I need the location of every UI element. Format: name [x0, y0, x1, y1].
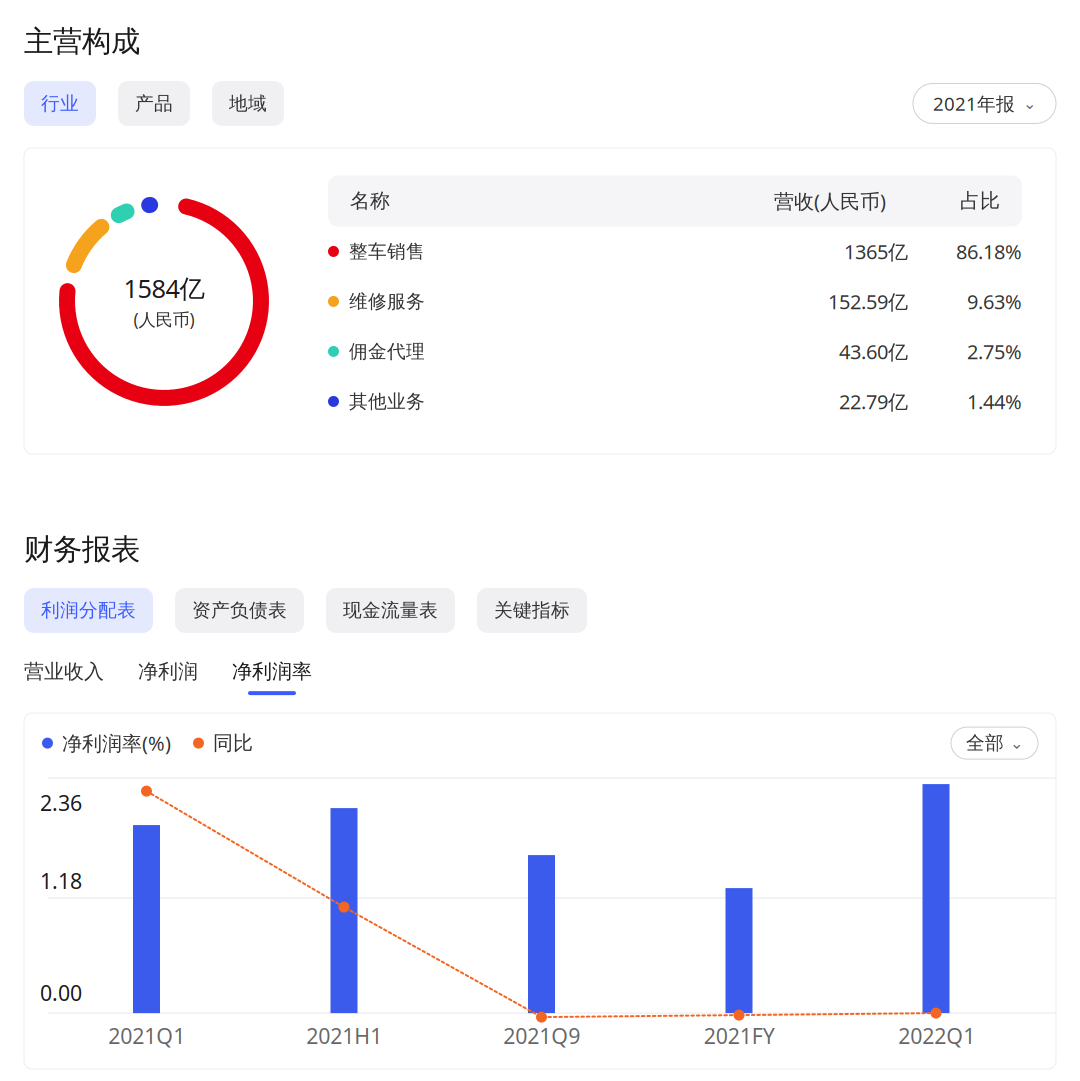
staticText: 关键指标 [494, 599, 570, 622]
staticText: 占比 [960, 188, 1000, 214]
staticText: 维修服务 [349, 290, 425, 313]
button[interactable]: 资产负债表 [175, 588, 304, 633]
staticText: 名称 [350, 188, 390, 214]
button[interactable]: 地域 [212, 81, 284, 126]
staticText: 资产负债表 [192, 599, 287, 622]
staticText: 1.18 [40, 866, 82, 895]
staticText: 现金流量表 [343, 599, 438, 622]
button[interactable]: 利润分配表 [24, 588, 153, 633]
button[interactable]: 产品 [118, 81, 190, 126]
staticText: 1365亿 [844, 238, 908, 265]
staticText: 净利润率(%) [62, 729, 171, 757]
staticText: 净利润率 [232, 659, 312, 684]
staticText: 9.63% [967, 288, 1022, 315]
staticText: 22.79亿 [839, 388, 908, 415]
staticText: 2021Q1 [108, 1021, 185, 1050]
button[interactable]: 行业 [24, 81, 96, 126]
staticText: 2021H1 [306, 1021, 382, 1050]
button[interactable]: 现金流量表 [326, 588, 455, 633]
staticText: 2021FY [704, 1021, 775, 1050]
staticText: 其他业务 [349, 390, 425, 413]
button[interactable]: 净利润率 [232, 659, 312, 695]
staticText: 86.18% [956, 238, 1022, 265]
staticText: 1584亿 [123, 271, 204, 305]
button[interactable]: 净利润 [138, 659, 198, 695]
staticText: 2021年报 [933, 91, 1015, 116]
staticText: 2022Q1 [898, 1021, 975, 1050]
staticText: 营业收入 [24, 659, 104, 684]
staticText: ⌄ [1023, 94, 1036, 113]
staticText: 行业 [41, 92, 79, 115]
staticText: 152.59亿 [828, 288, 908, 315]
button[interactable]: 全部 [951, 727, 1038, 759]
staticText: 利润分配表 [41, 599, 136, 622]
button[interactable]: 2021年报 [913, 83, 1056, 123]
staticText: 0.00 [40, 978, 82, 1007]
staticText: 佣金代理 [349, 340, 425, 363]
staticText: 整车销售 [349, 240, 425, 263]
staticText: 全部 [966, 731, 1004, 755]
staticText: 主营构成 [24, 23, 140, 60]
staticText: 2.36 [40, 788, 82, 817]
staticText: 财务报表 [24, 531, 140, 568]
staticText: (人民币) [133, 307, 194, 331]
staticText: 地域 [229, 92, 267, 115]
staticText: ⌄ [1010, 734, 1023, 752]
staticText: 净利润 [138, 659, 198, 684]
staticText: 2021Q9 [503, 1021, 580, 1050]
staticText: 营收(人民币) [774, 187, 886, 214]
staticText: 1.44% [967, 388, 1022, 415]
staticText: 产品 [135, 92, 173, 115]
button[interactable]: 营业收入 [24, 659, 104, 695]
staticText: 43.60亿 [839, 338, 908, 365]
staticText: 同比 [213, 730, 253, 756]
staticText: 2.75% [967, 338, 1022, 365]
button[interactable]: 关键指标 [477, 588, 587, 633]
